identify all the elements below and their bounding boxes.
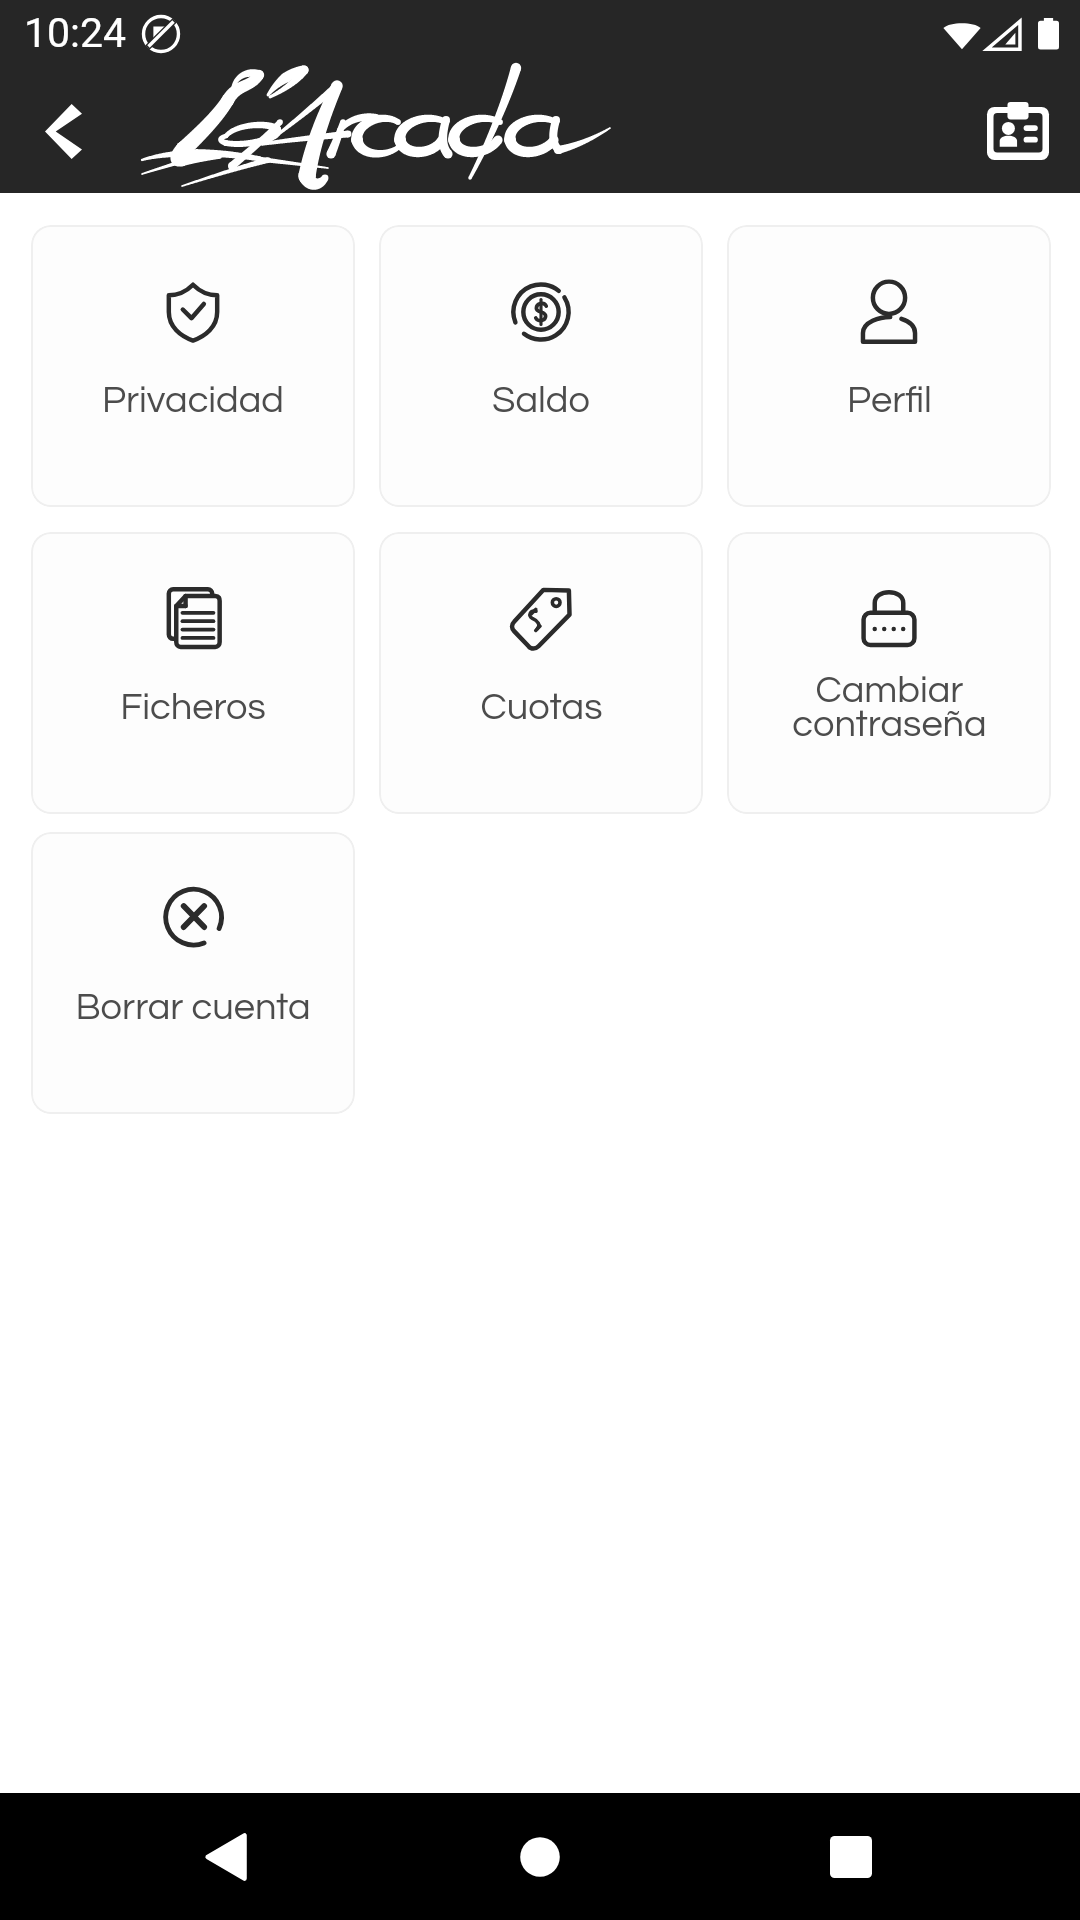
button[interactable]: Ficheros xyxy=(31,532,355,814)
button[interactable]: Privacidad xyxy=(31,225,355,507)
staticText: Cuotas xyxy=(480,688,603,727)
staticText: Perfil xyxy=(847,381,932,420)
button[interactable]: Home xyxy=(480,1797,600,1917)
staticText: 10:24 xyxy=(24,9,127,57)
staticText: Ficheros xyxy=(120,688,266,727)
button[interactable]: Cuotas xyxy=(379,532,703,814)
button[interactable]: Back xyxy=(167,1797,287,1917)
staticText: Privacidad xyxy=(102,381,284,420)
staticText: Borrar cuenta xyxy=(75,988,311,1027)
button[interactable]: Saldo xyxy=(379,225,703,507)
button[interactable]: Back xyxy=(17,85,109,177)
staticText: Saldo xyxy=(492,381,590,420)
button[interactable]: Recent apps xyxy=(791,1797,911,1917)
staticText: Cambiar contraseña xyxy=(792,671,987,744)
button[interactable]: Carnet xyxy=(974,87,1062,175)
button[interactable]: Borrar cuenta xyxy=(31,832,355,1114)
button[interactable]: Cambiar contraseña xyxy=(727,532,1051,814)
button[interactable]: Perfil xyxy=(727,225,1051,507)
